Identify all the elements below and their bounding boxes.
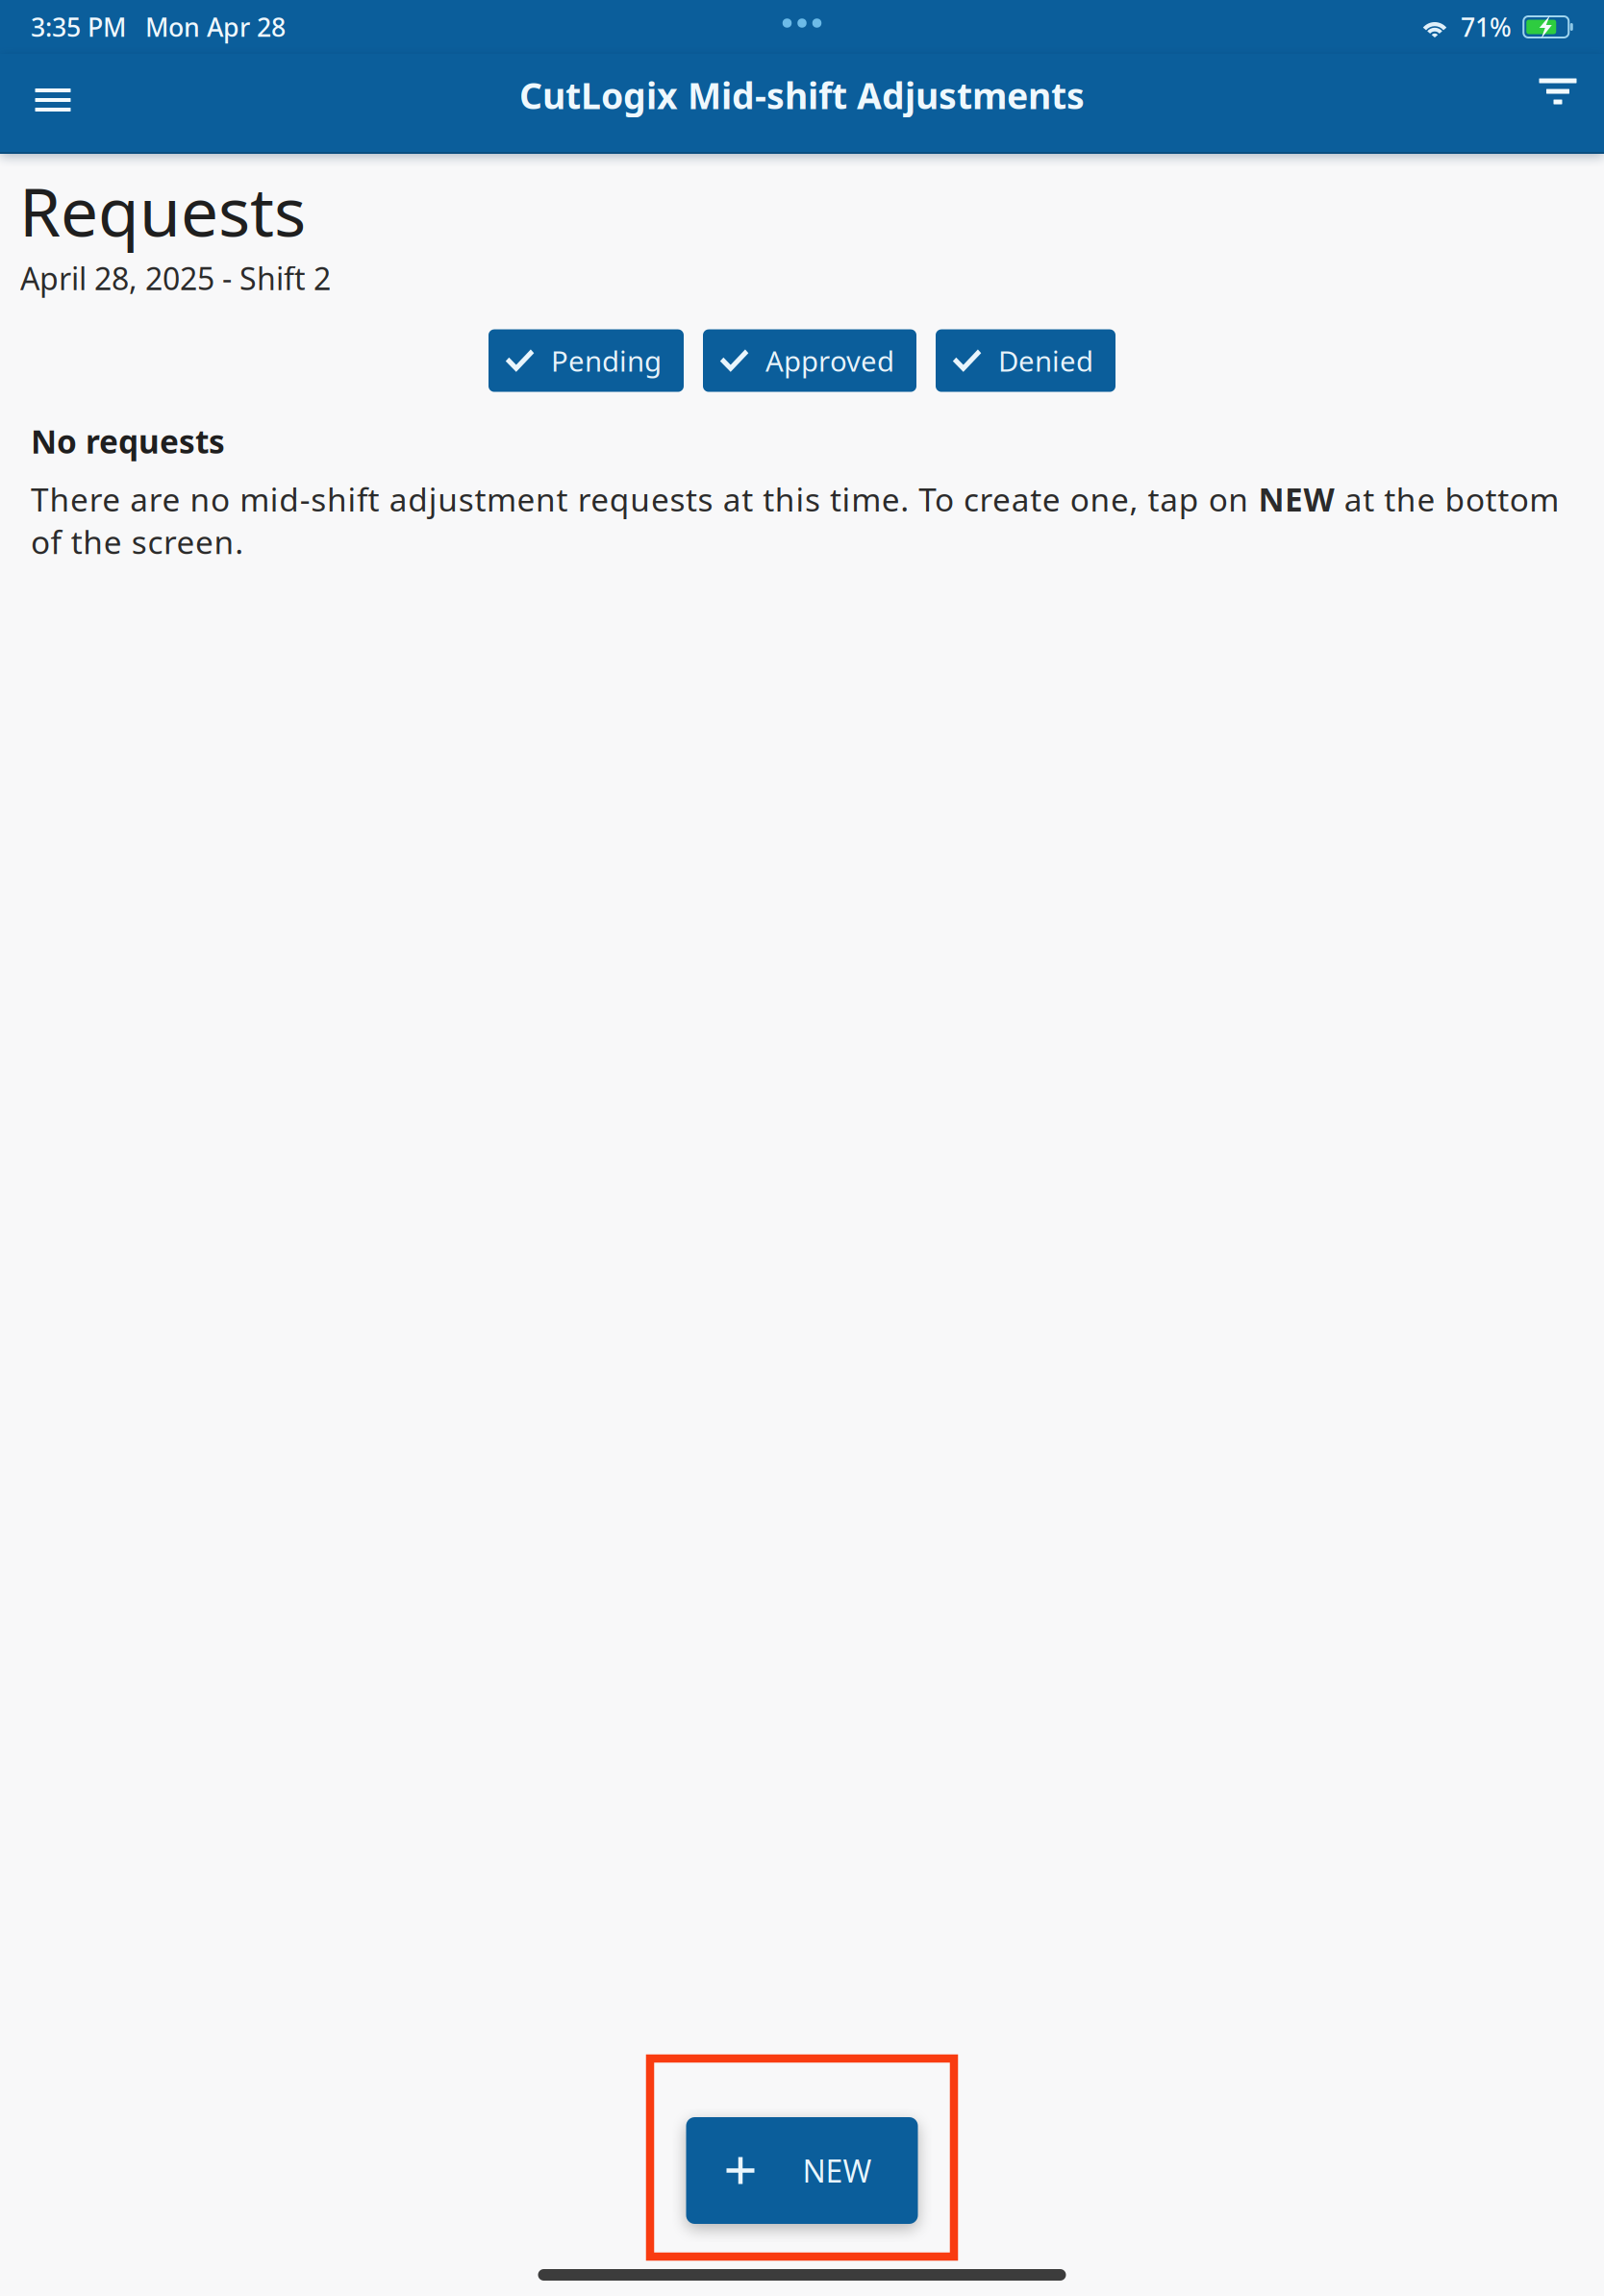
staticText: There are no mid-shift adjustment reques… xyxy=(31,478,1559,563)
button[interactable]: Pending xyxy=(489,329,684,392)
staticText: April 28, 2025 - Shift 2 xyxy=(20,258,331,299)
staticText: NEW xyxy=(802,2150,872,2191)
button[interactable]: Filter xyxy=(1521,41,1594,141)
staticText: Requests xyxy=(19,166,306,255)
staticText: 71% xyxy=(1461,10,1512,44)
button[interactable]: Denied xyxy=(936,329,1115,392)
staticText: Pending xyxy=(551,342,662,379)
staticText: CutLogix Mid-shift Adjustments xyxy=(519,71,1085,119)
staticText: 3:35 PM xyxy=(31,10,126,44)
staticText: Denied xyxy=(998,342,1093,379)
button[interactable]: Approved xyxy=(703,329,916,392)
staticText: Mon Apr 28 xyxy=(145,10,286,44)
button[interactable]: NEW xyxy=(686,2117,918,2224)
staticText: Approved xyxy=(765,342,894,379)
button[interactable]: Menu xyxy=(17,50,88,150)
staticText: No requests xyxy=(31,420,225,462)
